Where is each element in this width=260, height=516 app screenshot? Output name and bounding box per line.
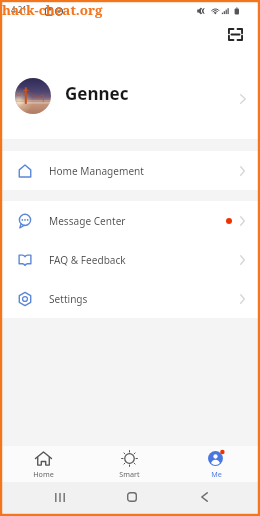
staticText: Message Center [49,214,126,228]
button[interactable]: Scan QR code [221,20,249,48]
staticText: Gennec [65,82,129,105]
button[interactable]: Home [114,480,150,514]
staticText: Home [33,469,54,479]
button[interactable]: Home Management [0,151,260,190]
button[interactable]: FAQ & Feedback [0,240,260,279]
button[interactable]: Settings [0,279,260,318]
staticText: FAQ & Feedback [49,253,126,267]
staticText: 4:21 [11,4,27,15]
staticText: hack-cheat.org [2,1,103,19]
button[interactable]: Back [186,480,222,514]
staticText: Me [211,469,222,479]
button[interactable]: Gennec [0,57,260,135]
button[interactable]: Message Center [0,201,260,240]
button[interactable]: Smart [86,446,173,482]
button[interactable]: Home [0,446,86,482]
staticText: Home Management [49,164,144,178]
button[interactable]: Me [173,446,260,482]
button[interactable]: Recent apps [42,480,78,514]
staticText: Smart [119,469,140,479]
staticText: Settings [49,292,88,306]
